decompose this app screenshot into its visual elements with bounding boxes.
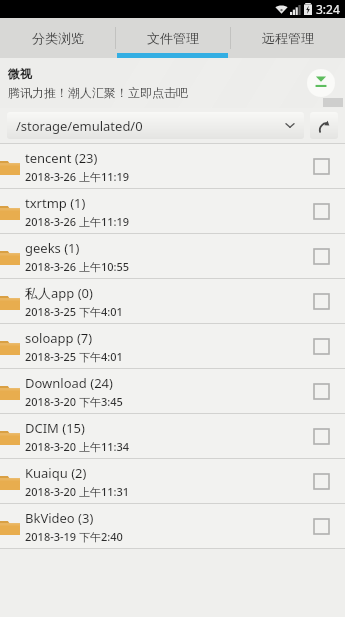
staticText: 微视 [8, 66, 32, 81]
button[interactable]: Select DCIM (15) [297, 414, 345, 458]
staticText: 2018-3-20 上午11:34 [25, 439, 130, 454]
staticText: 3:24 [316, 1, 340, 17]
staticText: soloapp (7) [25, 329, 93, 347]
button[interactable]: Select soloapp (7) [297, 324, 345, 368]
button[interactable]: 文件管理 [115, 18, 230, 58]
staticText: 2018-3-19 下午2:40 [25, 529, 123, 544]
staticText: 2018-3-26 上午11:19 [25, 214, 130, 229]
staticText: Kuaiqu (2) [25, 464, 87, 482]
button[interactable]: txrtmp (1) [0, 189, 345, 234]
button[interactable]: BkVideo (3) [0, 504, 345, 549]
staticText: 2018-3-25 下午4:01 [25, 349, 123, 364]
button[interactable]: Select Download (24) [297, 369, 345, 413]
staticText: 2018-3-20 上午11:31 [25, 484, 130, 499]
button[interactable]: geeks (1) [0, 234, 345, 279]
button[interactable]: Download [307, 69, 335, 97]
staticText: 分类浏览 [32, 30, 84, 46]
staticText: 私人app (0) [25, 284, 93, 302]
button[interactable]: Select tencent (23) [297, 144, 345, 188]
staticText: txrtmp (1) [25, 194, 86, 212]
staticText: 2018-3-25 下午4:01 [25, 304, 123, 319]
button[interactable]: /storage/emulated/0 [7, 112, 304, 139]
staticText: tencent (23) [25, 149, 98, 167]
staticText: 文件管理 [147, 30, 199, 46]
button[interactable]: Kuaiqu (2) [0, 459, 345, 504]
button[interactable]: Up one level [310, 112, 338, 139]
button[interactable]: 微视 [0, 58, 345, 108]
staticText: 2018-3-26 上午10:55 [25, 259, 130, 274]
staticText: Download (24) [25, 374, 113, 392]
staticText: 远程管理 [262, 30, 314, 46]
button[interactable]: Select BkVideo (3) [297, 504, 345, 548]
staticText: 腾讯力推！潮人汇聚！立即点击吧 [8, 85, 188, 100]
staticText: geeks (1) [25, 239, 80, 257]
staticText: 2018-3-20 下午3:45 [25, 394, 123, 409]
button[interactable]: Download (24) [0, 369, 345, 414]
button[interactable]: 远程管理 [230, 18, 345, 58]
button[interactable]: 分类浏览 [0, 18, 115, 58]
button[interactable]: Select geeks (1) [297, 234, 345, 278]
button[interactable]: 私人app (0) [0, 279, 345, 324]
staticText: /storage/emulated/0 [16, 117, 285, 135]
button[interactable]: tencent (23) [0, 144, 345, 189]
button[interactable]: Select Kuaiqu (2) [297, 459, 345, 503]
staticText: DCIM (15) [25, 419, 85, 437]
button[interactable]: soloapp (7) [0, 324, 345, 369]
staticText: 2018-3-26 上午11:19 [25, 169, 130, 184]
staticText: BkVideo (3) [25, 509, 94, 527]
button[interactable]: Select 私人app (0) [297, 279, 345, 323]
button[interactable]: DCIM (15) [0, 414, 345, 459]
button[interactable]: Select txrtmp (1) [297, 189, 345, 233]
